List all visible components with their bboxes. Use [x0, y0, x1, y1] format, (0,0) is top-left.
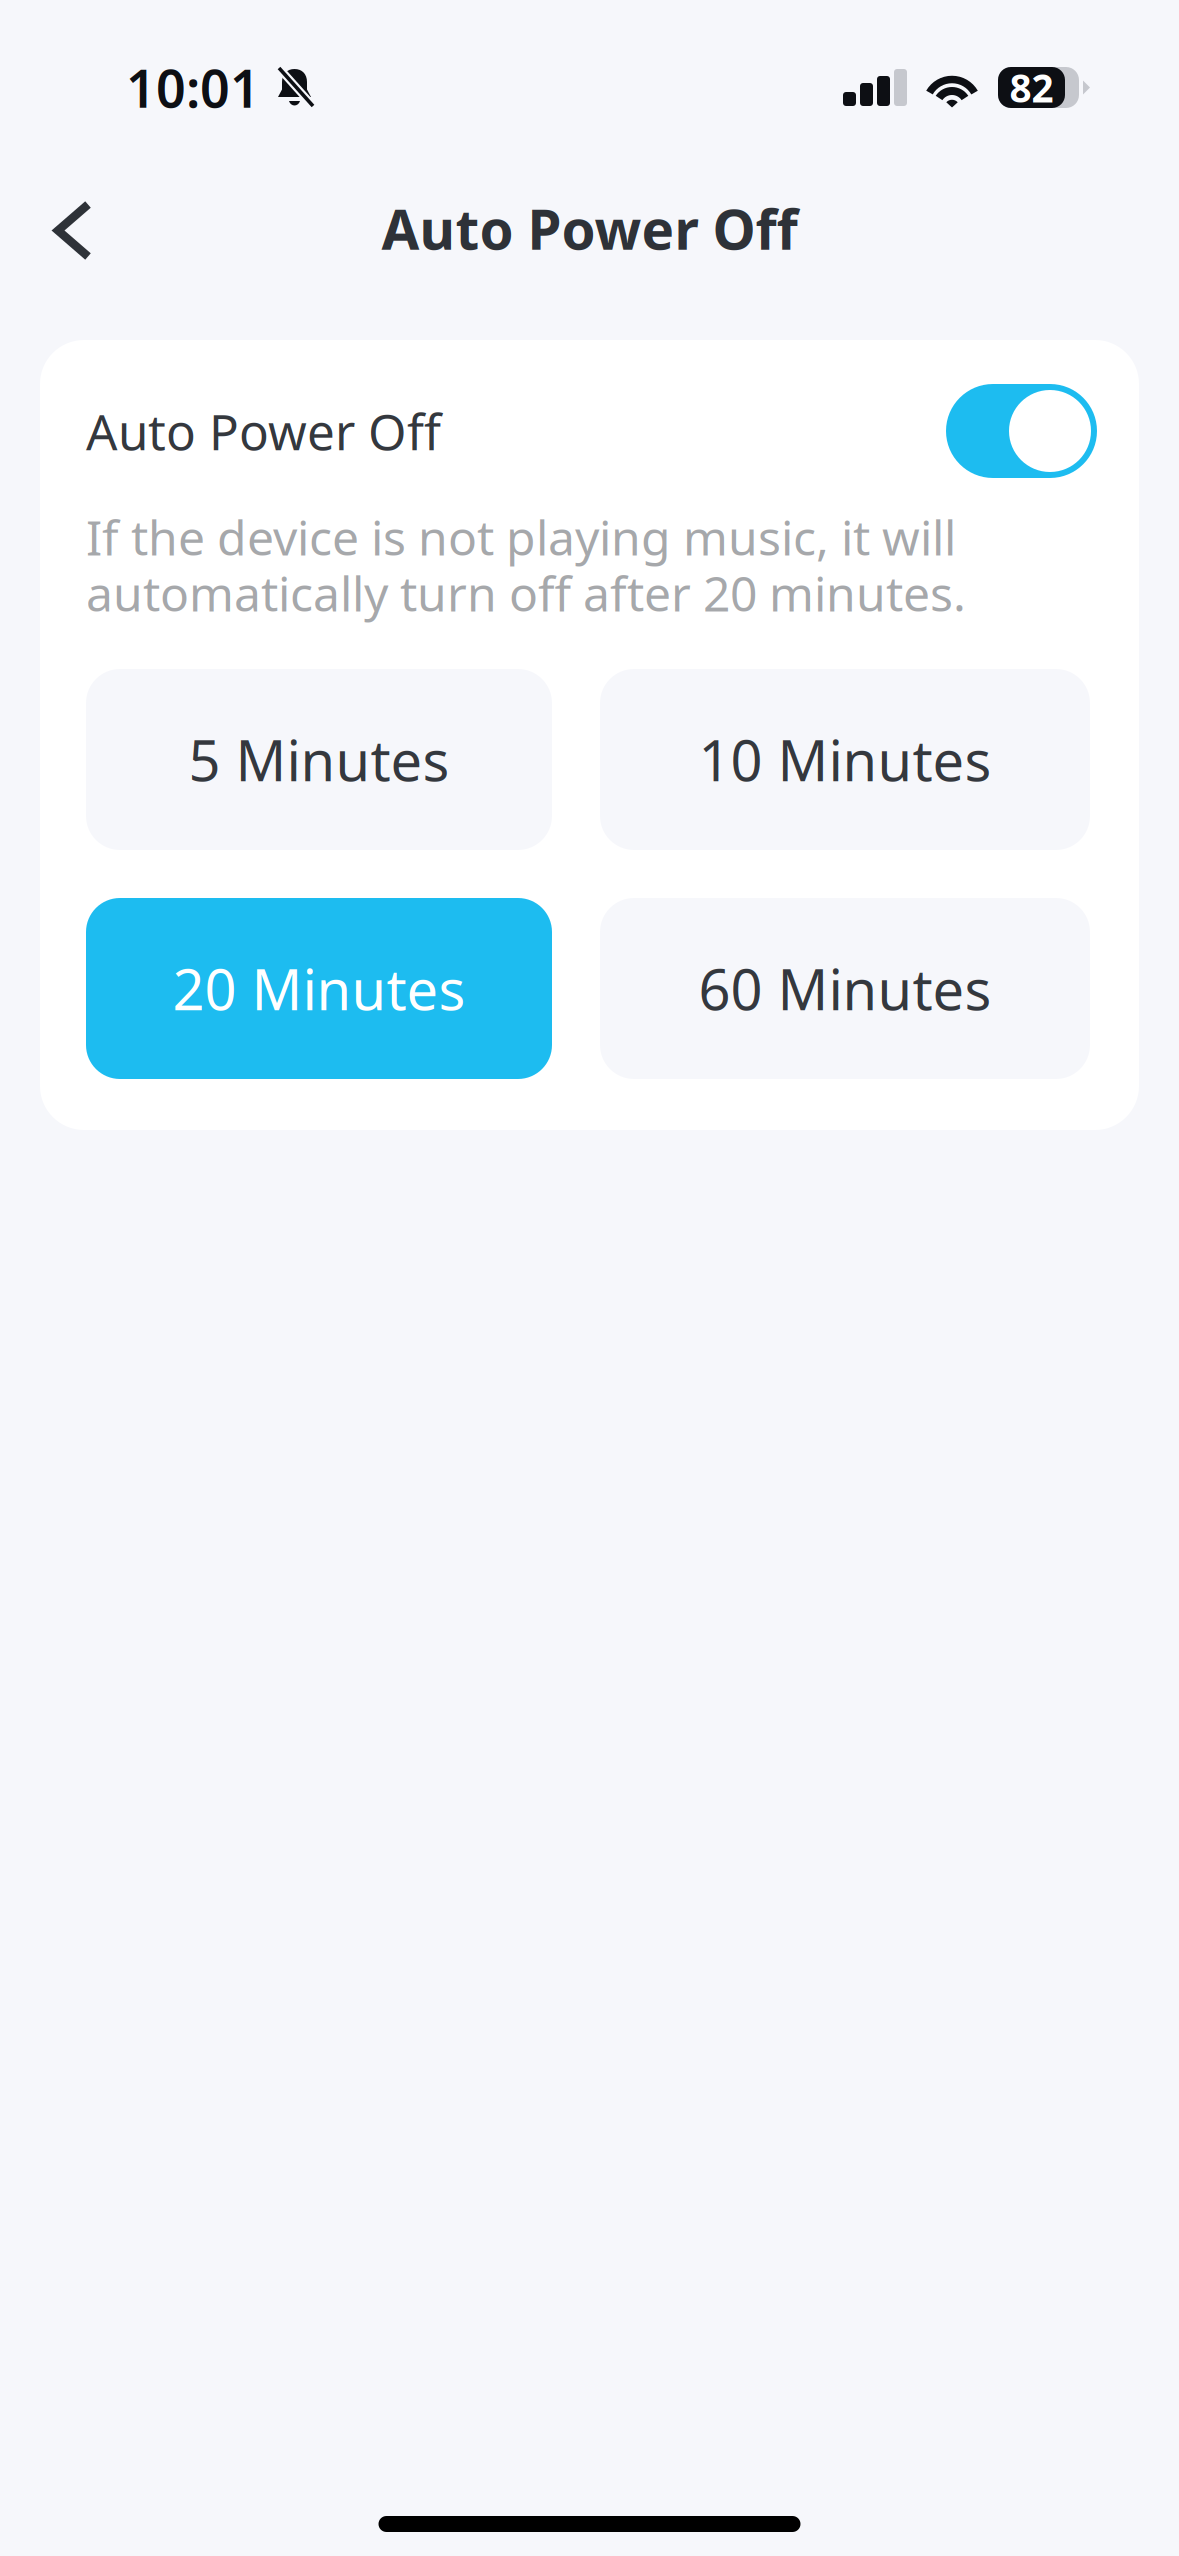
staticText: 5 Minutes	[188, 722, 449, 797]
staticText: Auto Power Off	[86, 398, 441, 464]
staticText: 20 Minutes	[172, 951, 465, 1026]
button[interactable]: 20 Minutes	[86, 898, 552, 1079]
button[interactable]: 5 Minutes	[86, 669, 552, 850]
button[interactable]: 10 Minutes	[600, 669, 1090, 850]
staticText: 60 Minutes	[698, 951, 991, 1026]
staticText: Auto Power Off	[381, 192, 797, 265]
staticText: automatically turn off after 20 minutes.	[86, 561, 966, 625]
staticText: If the device is not playing music, it w…	[86, 505, 956, 569]
button[interactable]: Auto Power Off	[946, 384, 1097, 478]
button[interactable]: Back	[0, 170, 123, 286]
staticText: 10:01	[126, 53, 260, 122]
staticText: 10 Minutes	[698, 722, 991, 797]
staticText: 82	[1009, 62, 1053, 113]
button[interactable]: 60 Minutes	[600, 898, 1090, 1079]
